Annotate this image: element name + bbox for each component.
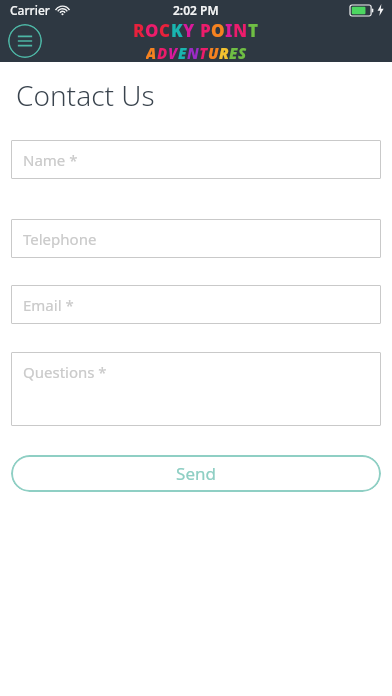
staticText: S bbox=[238, 43, 247, 61]
staticText: P bbox=[200, 19, 211, 42]
staticText: Send bbox=[176, 462, 216, 485]
button[interactable]: Name * bbox=[11, 140, 381, 179]
button[interactable]: Telephone bbox=[11, 219, 381, 258]
staticText: I bbox=[225, 19, 233, 42]
staticText: Questions * bbox=[23, 362, 107, 382]
staticText: D bbox=[157, 43, 168, 61]
button[interactable]: Email * bbox=[11, 285, 381, 324]
staticText: O bbox=[211, 19, 225, 42]
staticText: U bbox=[208, 43, 219, 61]
staticText: 2:02 PM bbox=[173, 2, 219, 18]
staticText: T bbox=[199, 43, 208, 61]
staticText: K bbox=[171, 19, 183, 42]
staticText: C bbox=[159, 19, 171, 42]
staticText: Y bbox=[183, 19, 195, 42]
staticText: R bbox=[219, 43, 229, 61]
button[interactable]: Questions * bbox=[11, 352, 381, 426]
staticText: V bbox=[168, 43, 178, 61]
staticText: Name * bbox=[23, 150, 78, 169]
staticText: Email * bbox=[23, 295, 74, 314]
button[interactable]: Send bbox=[11, 455, 381, 492]
staticText: E bbox=[229, 43, 238, 61]
button[interactable]: Menu bbox=[8, 24, 42, 58]
staticText: N bbox=[233, 19, 248, 42]
staticText: T bbox=[248, 19, 259, 42]
staticText: O bbox=[145, 19, 159, 42]
staticText: N bbox=[187, 43, 199, 61]
staticText: Contact Us bbox=[16, 76, 155, 114]
staticText: R bbox=[133, 19, 145, 42]
staticText: E bbox=[178, 43, 187, 61]
staticText: Telephone bbox=[23, 229, 97, 248]
staticText: Carrier bbox=[10, 2, 50, 18]
staticText: A bbox=[146, 43, 157, 61]
